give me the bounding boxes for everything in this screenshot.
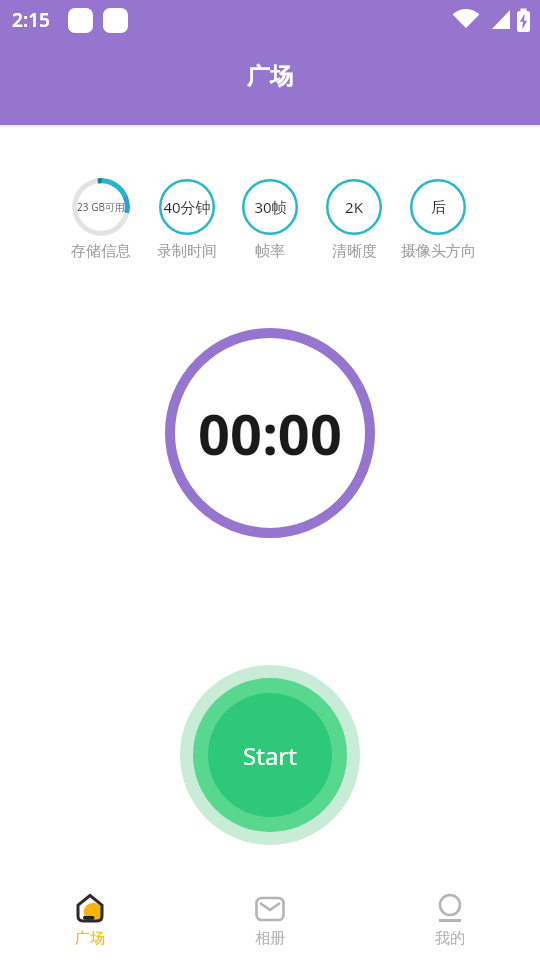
staticText: 2:15 (12, 7, 50, 33)
staticText: 广场 (247, 62, 293, 91)
button[interactable]: Start (180, 665, 360, 845)
staticText: 我的 (435, 929, 465, 948)
staticText: 相册 (255, 929, 285, 948)
staticText: 23 GB可用 (77, 200, 125, 214)
staticText: Start (243, 739, 297, 772)
staticText: 帧率 (255, 242, 285, 261)
button[interactable]: 23 GB可用 (72, 178, 130, 236)
staticText: 摄像头方向 (401, 242, 476, 261)
staticText: 00:00 (198, 395, 342, 471)
staticText: 清晰度 (332, 242, 377, 261)
staticText: 广场 (75, 929, 105, 948)
staticText: 2K (345, 197, 363, 217)
button[interactable]: 40分钟 (158, 178, 216, 236)
staticText: 录制时间 (157, 242, 217, 261)
button[interactable]: 后 (409, 178, 467, 236)
staticText: 30帧 (254, 197, 287, 217)
staticText: 存储信息 (71, 242, 131, 261)
button[interactable]: 2K (325, 178, 383, 236)
button[interactable]: 30帧 (241, 178, 299, 236)
staticText: 40分钟 (163, 197, 211, 217)
button[interactable]: 广场 (0, 870, 180, 960)
staticText: 后 (431, 198, 446, 217)
button[interactable]: 我的 (360, 870, 540, 960)
button[interactable]: 相册 (180, 870, 360, 960)
